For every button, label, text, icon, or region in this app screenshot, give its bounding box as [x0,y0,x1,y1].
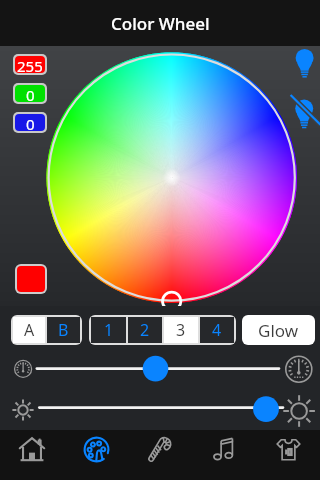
button[interactable]: 1 [91,317,126,343]
button[interactable]: Brightness [32,395,292,421]
staticText: A [24,319,35,341]
button[interactable]: A [13,317,45,343]
staticText: Color Wheel [111,12,210,35]
button[interactable] [17,266,45,292]
button[interactable]: Light off [291,92,319,128]
button[interactable]: 4 [200,317,234,343]
button[interactable]: 0 [15,85,45,102]
staticText: Glow [258,319,299,342]
button[interactable]: Light on [291,47,319,81]
button[interactable]: Shirt [256,430,320,480]
staticText: 0 [26,85,35,102]
button[interactable]: Palette [64,430,128,480]
button[interactable]: Speed [30,356,290,382]
button[interactable]: Glow [242,315,315,345]
button[interactable]: 255 [15,56,45,73]
button[interactable]: Home [0,430,64,480]
staticText: 255 [17,56,43,73]
button[interactable]: Candy [128,430,192,480]
staticText: B [58,319,69,341]
button[interactable]: 3 [164,317,198,343]
staticText: 2 [140,319,150,341]
staticText: 3 [176,319,186,341]
staticText: 4 [212,319,222,341]
button[interactable]: 0 [15,114,45,131]
staticText: 1 [104,319,114,341]
button[interactable]: B [47,317,80,343]
staticText: 0 [26,114,35,131]
button[interactable]: Music [192,430,256,480]
button[interactable]: 2 [128,317,162,343]
